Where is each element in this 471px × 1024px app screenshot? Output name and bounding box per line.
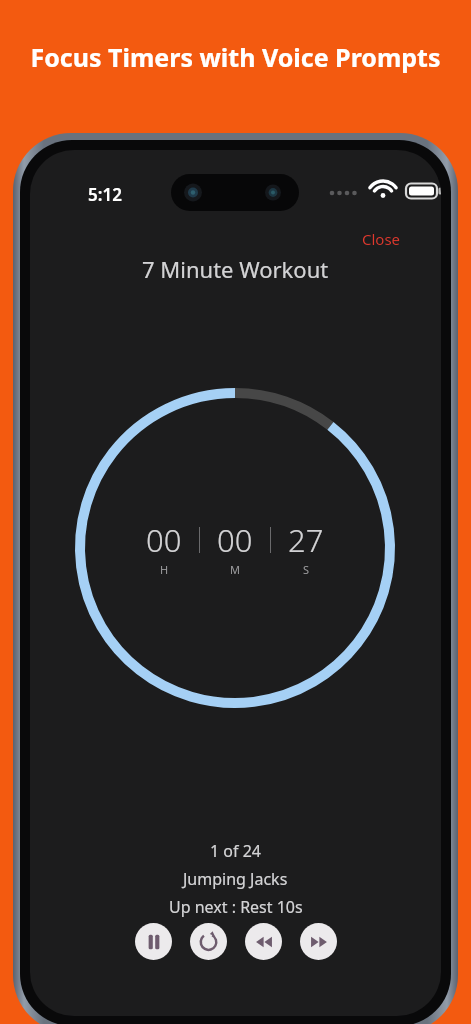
staticText: 5:12 <box>88 183 122 206</box>
staticText: S <box>303 562 310 577</box>
button[interactable]: Restart <box>190 923 227 960</box>
button[interactable]: Fast forward <box>300 923 337 960</box>
button[interactable]: Close <box>352 224 411 254</box>
staticText: Focus Timers with Voice Prompts <box>30 40 441 74</box>
staticText: H <box>160 562 169 577</box>
staticText: 00 <box>146 519 182 561</box>
staticText: 27 <box>288 519 324 561</box>
button[interactable]: Pause <box>135 923 172 960</box>
staticText: 1 of 24 <box>210 840 261 862</box>
staticText: 7 Minute Workout <box>142 254 329 284</box>
staticText: Jumping Jacks <box>183 868 288 890</box>
button[interactable]: Rewind <box>245 923 282 960</box>
staticText: M <box>230 562 240 577</box>
staticText: Up next : Rest 10s <box>169 896 303 918</box>
staticText: Close <box>362 229 401 249</box>
staticText: 00 <box>217 519 253 561</box>
